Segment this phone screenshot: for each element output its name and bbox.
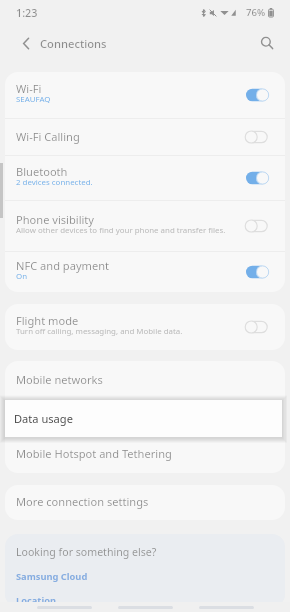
staticText: Turn off calling, messaging, and Mobile … [16,326,183,337]
button[interactable]: Turn off [246,170,272,186]
button[interactable]: Phone visibility [5,201,285,251]
staticText: Samsung Cloud [16,570,88,583]
button[interactable]: Data usage [5,400,282,437]
staticText: Location [16,594,57,607]
staticText: More connection settings [16,494,149,509]
staticText: 1:23 [16,5,38,20]
staticText: Phone visibility [16,212,95,227]
button[interactable]: Turn on [246,129,272,145]
staticText: Mobile Hotspot and Tethering [16,446,172,461]
button[interactable]: Bluetooth [5,156,285,200]
button[interactable]: NFC and payment [5,252,285,292]
staticText: Wi-Fi Calling [16,129,80,144]
staticText: Data usage [14,411,73,426]
button[interactable]: Mobile networks [5,361,285,399]
button[interactable]: Turn off [246,264,272,280]
button[interactable]: Mobile Hotspot and Tethering [5,436,285,473]
staticText: Connections [40,36,107,51]
button[interactable]: Search [253,29,281,57]
button[interactable]: Turn on [246,319,272,335]
staticText: Flight mode [16,313,79,328]
staticText: Bluetooth [16,164,68,179]
button[interactable]: Wi-Fi [5,72,285,118]
button[interactable]: More connection settings [5,485,285,520]
staticText: Data usage [16,409,75,424]
staticText: Mobile networks [16,372,103,387]
staticText: Looking for something else? [16,545,157,559]
button[interactable]: Flight mode [5,304,285,350]
button[interactable]: Data usage [5,399,285,436]
staticText: 76% [246,6,266,19]
staticText: Allow other devices to find your phone a… [16,225,226,236]
button[interactable]: Wi-Fi Calling [5,119,285,155]
staticText: 2 devices connected. [16,177,93,188]
staticText: SEAUFAQ [16,94,51,105]
button[interactable]: Turn on [246,218,272,234]
button[interactable]: Back [11,28,41,58]
staticText: NFC and payment [16,258,110,273]
button[interactable]: Turn off [246,87,272,103]
staticText: On [16,271,28,282]
staticText: Wi-Fi [16,81,42,96]
